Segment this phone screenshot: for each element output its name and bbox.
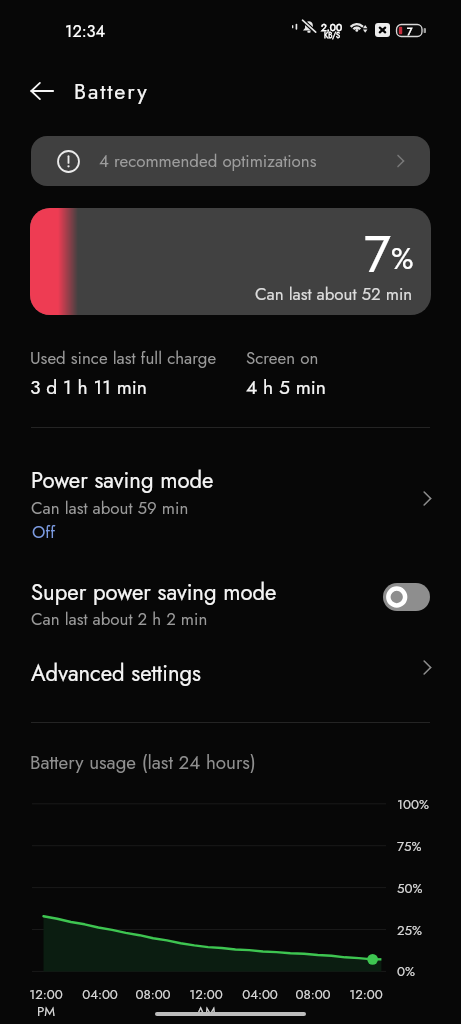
staticText: Used since last full charge [30,346,217,370]
staticText: 12:34 [65,19,106,43]
staticText: 4 recommended optimizations [99,149,391,173]
staticText: Screen on [246,346,319,370]
button[interactable]: Super power saving mode [0,562,461,630]
staticText: Super power saving mode [31,576,277,608]
staticText: 100% [397,795,429,814]
staticText: Can last about 2 h 2 min [31,607,208,631]
button[interactable]: 4 recommended optimizations [31,136,430,186]
staticText: % [391,237,414,280]
staticText: 7 [407,24,413,37]
staticText: Advanced settings [31,657,202,689]
staticText: 25% [397,921,423,940]
staticText: 04:00 [70,985,130,1004]
staticText: 04:00 [230,985,290,1004]
staticText: Can last about 52 min [255,282,413,306]
staticText: KB/S [324,30,341,41]
button[interactable]: 7 [30,208,431,315]
staticText: 7 [364,217,391,291]
staticText: Battery usage (last 24 hours) [30,749,256,776]
staticText: Can last about 59 min [31,496,189,520]
button[interactable]: Power saving mode [0,455,461,547]
staticText: 4 h 5 min [246,373,326,401]
staticText: 0% [397,962,415,981]
staticText: 2.00 [321,20,343,35]
staticText: 75% [397,837,422,856]
staticText: AM [176,1002,236,1021]
staticText: 12:00 [176,985,236,1004]
staticText: Off [32,520,56,544]
button[interactable]: Super power saving mode toggle [383,583,430,611]
staticText: Power saving mode [31,464,214,496]
staticText: 08:00 [283,985,343,1004]
button[interactable]: Back [26,75,58,107]
staticText: 3 d 1 h 11 min [30,373,147,401]
staticText: 08:00 [123,985,183,1004]
staticText: 12:00 [336,985,396,1004]
staticText: 50% [397,879,423,898]
button[interactable]: Advanced settings [0,640,461,694]
staticText: 12:00 [16,985,76,1004]
staticText: PM [16,1002,76,1021]
staticText: Battery [74,76,149,107]
